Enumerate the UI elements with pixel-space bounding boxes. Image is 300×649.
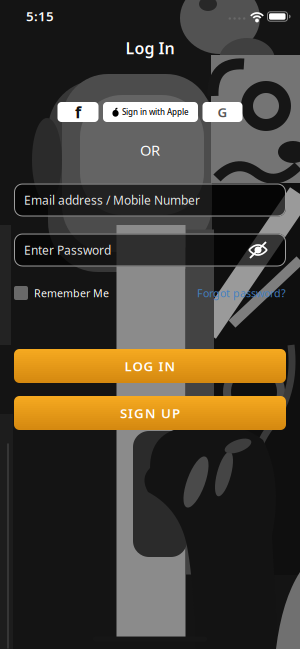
button[interactable]: LOG IN: [14, 349, 286, 383]
button[interactable]: Enter Password: [14, 233, 286, 266]
button[interactable]: Remember Me: [14, 286, 109, 300]
button[interactable]: f: [57, 102, 98, 122]
staticText: Enter Password: [24, 242, 111, 258]
staticText: Forgot password?: [197, 286, 286, 300]
staticText: Email address / Mobile Number: [24, 192, 200, 208]
staticText: OR: [140, 140, 160, 160]
button[interactable]: Sign in with Apple: [103, 102, 198, 122]
staticText: SIGN UP: [120, 404, 180, 422]
staticText: Remember Me: [34, 286, 109, 300]
staticText: Log In: [125, 37, 174, 59]
staticText: f: [75, 101, 81, 123]
staticText: Sign in with Apple: [122, 107, 189, 117]
button[interactable]: SIGN UP: [14, 396, 286, 430]
button[interactable]: G: [202, 102, 242, 122]
staticText: G: [217, 103, 227, 121]
button[interactable]: Email address / Mobile Number: [14, 183, 286, 216]
staticText: LOG IN: [124, 357, 175, 375]
button[interactable]: Forgot password?: [197, 286, 286, 300]
staticText: 5:15: [26, 7, 54, 25]
